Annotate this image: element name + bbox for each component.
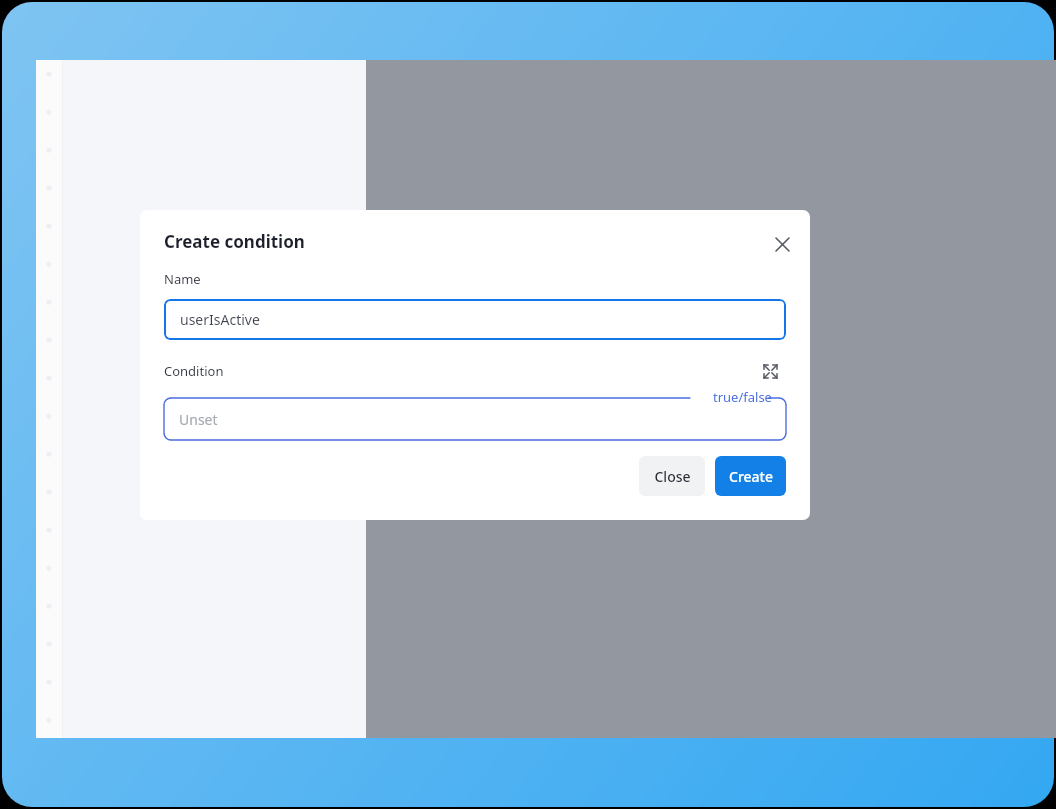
button[interactable]: Create <box>715 456 786 496</box>
staticText: Create <box>729 467 773 486</box>
staticText: Condition <box>164 362 224 380</box>
staticText: Create condition <box>164 230 305 253</box>
button[interactable]: Close <box>639 456 705 496</box>
staticText: Unset <box>179 410 218 429</box>
button[interactable]: Expand editor <box>754 355 786 387</box>
staticText: Name <box>164 270 201 288</box>
button[interactable]: userIsActive <box>164 299 786 340</box>
staticText: true/false <box>713 388 772 406</box>
button[interactable]: Close dialog <box>760 222 804 266</box>
staticText: userIsActive <box>180 310 260 329</box>
button[interactable]: Unset <box>164 398 786 440</box>
staticText: Close <box>654 467 691 486</box>
